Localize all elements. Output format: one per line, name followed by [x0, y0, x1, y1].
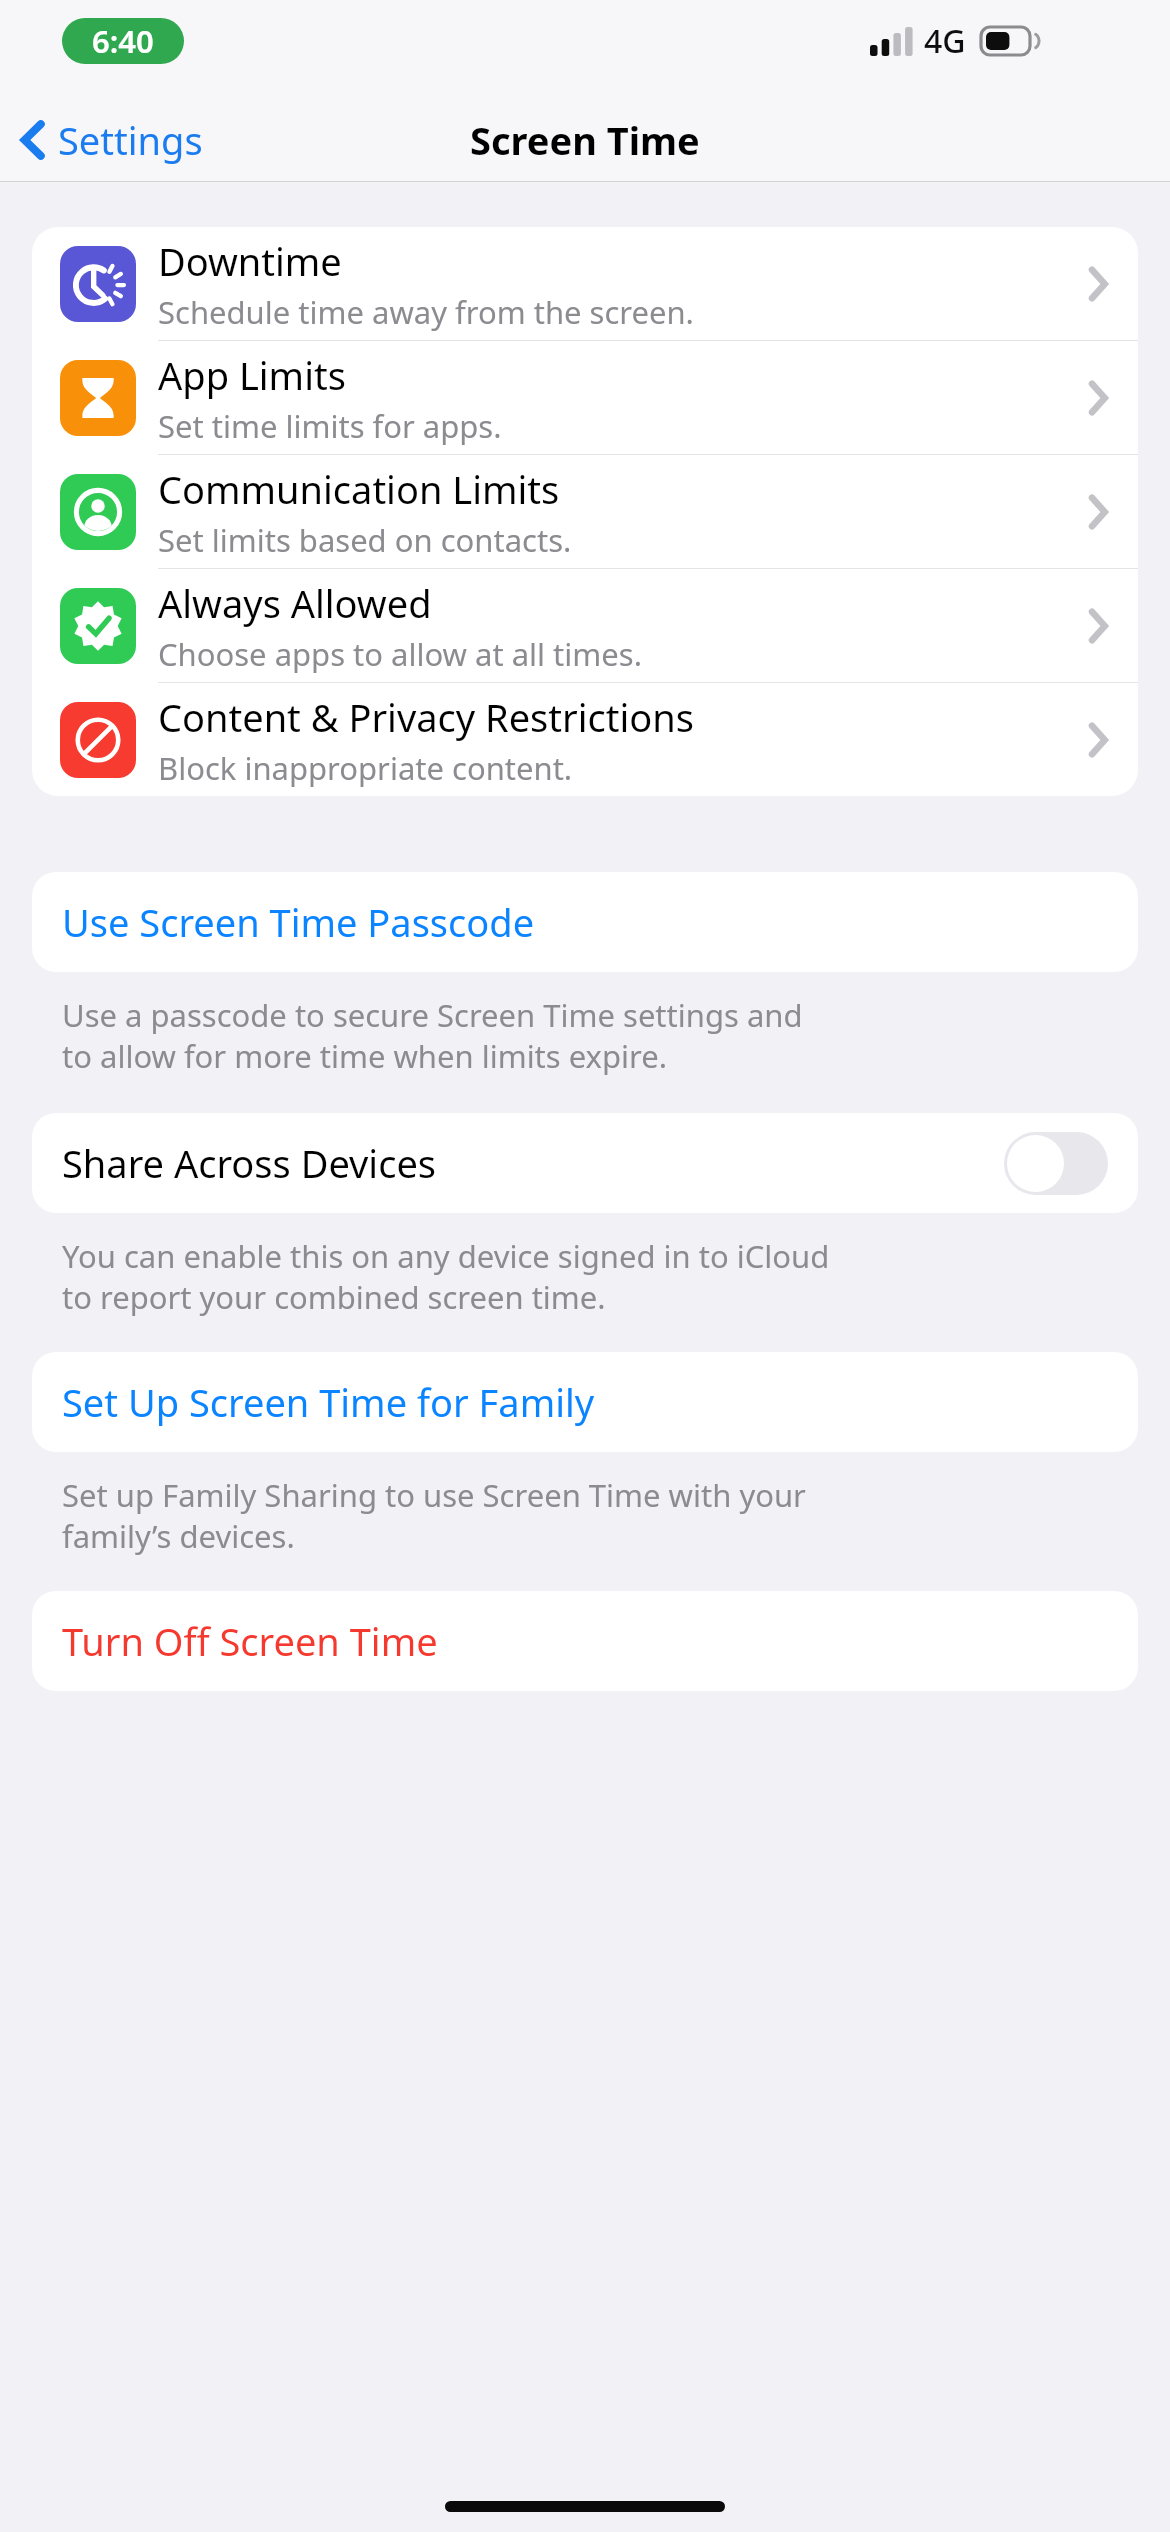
button[interactable]: Always Allowed	[32, 569, 1138, 682]
staticText: Always Allowed	[158, 577, 432, 629]
staticText: Set time limits for apps.	[158, 405, 502, 447]
button[interactable]: Back to Settings	[14, 106, 209, 174]
staticText: Choose apps to allow at all times.	[158, 633, 642, 675]
staticText: Communication Limits	[158, 463, 560, 515]
button[interactable]: Content & Privacy Restrictions	[32, 683, 1138, 796]
button[interactable]: Set Up Screen Time for Family	[32, 1352, 1138, 1452]
staticText: 4G	[924, 19, 966, 63]
staticText: Set up Family Sharing to use Screen Time…	[62, 1474, 806, 1557]
staticText: Set limits based on contacts.	[158, 519, 572, 561]
staticText: Schedule time away from the screen.	[158, 291, 694, 333]
staticText: Set Up Screen Time for Family	[62, 1376, 595, 1428]
staticText: Screen Time	[470, 114, 700, 166]
button[interactable]: Communication Limits	[32, 455, 1138, 568]
staticText: Turn Off Screen Time	[62, 1615, 438, 1667]
staticText: Settings	[58, 114, 203, 166]
staticText: Downtime	[158, 235, 342, 287]
button[interactable]: Share Across Devices	[32, 1113, 1138, 1213]
staticText: Block inappropriate content.	[158, 747, 573, 789]
button[interactable]: Downtime	[32, 227, 1138, 340]
button[interactable]: App Limits	[32, 341, 1138, 454]
staticText: Use Screen Time Passcode	[62, 896, 535, 948]
staticText: App Limits	[158, 349, 346, 401]
staticText: Use a passcode to secure Screen Time set…	[62, 994, 803, 1077]
staticText: Share Across Devices	[62, 1137, 437, 1189]
staticText: You can enable this on any device signed…	[62, 1235, 830, 1318]
button[interactable]: Turn Off Screen Time	[32, 1591, 1138, 1691]
staticText: Content & Privacy Restrictions	[158, 691, 694, 743]
staticText: 6:40	[92, 20, 154, 62]
button[interactable]: Use Screen Time Passcode	[32, 872, 1138, 972]
